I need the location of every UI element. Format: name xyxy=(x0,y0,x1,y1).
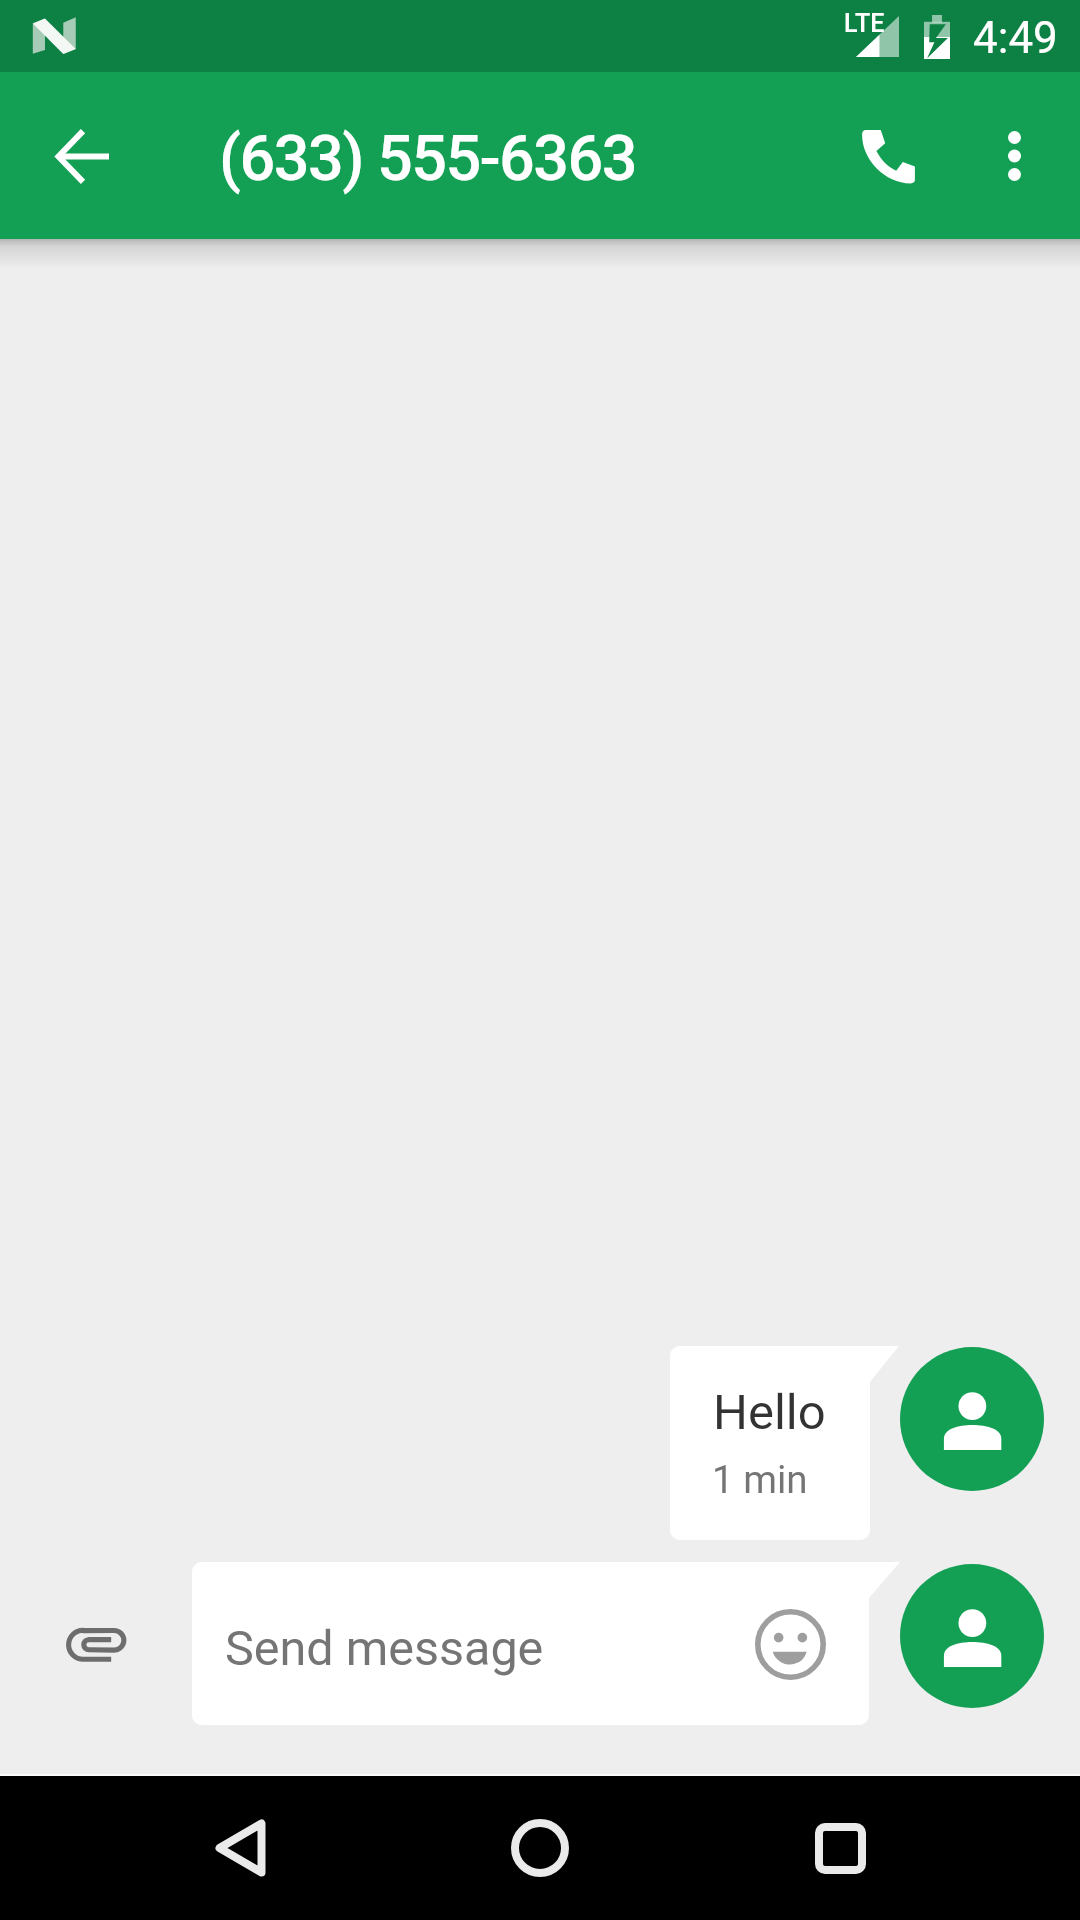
button[interactable]: Send message xyxy=(192,1562,900,1725)
button[interactable]: Home xyxy=(490,1798,590,1898)
staticText: Hello xyxy=(713,1384,826,1441)
staticText: 4:49 xyxy=(973,12,1058,64)
staticText: LTE xyxy=(844,9,885,38)
button[interactable]: Recent apps xyxy=(790,1798,890,1898)
button[interactable]: Navigate up xyxy=(31,104,135,208)
button[interactable]: Your avatar xyxy=(900,1564,1044,1708)
button[interactable]: Insert emoji xyxy=(737,1591,843,1697)
staticText: 1 min xyxy=(712,1457,808,1502)
staticText: Send message xyxy=(225,1620,544,1677)
button[interactable]: Contact avatar xyxy=(900,1347,1044,1491)
button[interactable]: Attach xyxy=(35,1594,157,1696)
staticText: (633) 555-6363 xyxy=(219,122,636,196)
button[interactable]: Call xyxy=(836,104,940,208)
button[interactable]: More options xyxy=(962,104,1066,208)
button[interactable]: Hello xyxy=(670,1346,899,1540)
button[interactable]: Back xyxy=(190,1798,290,1898)
